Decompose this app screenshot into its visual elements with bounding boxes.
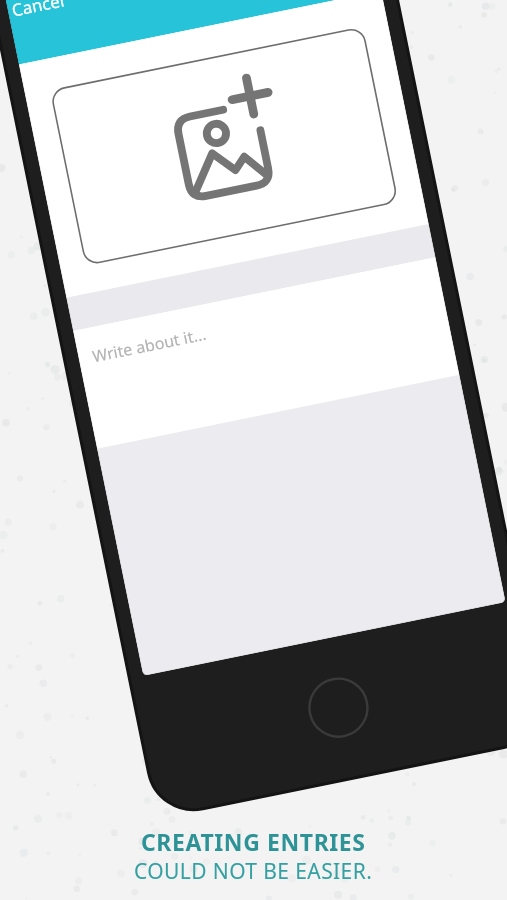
button[interactable]: New Entry screen preview (0, 0, 507, 900)
